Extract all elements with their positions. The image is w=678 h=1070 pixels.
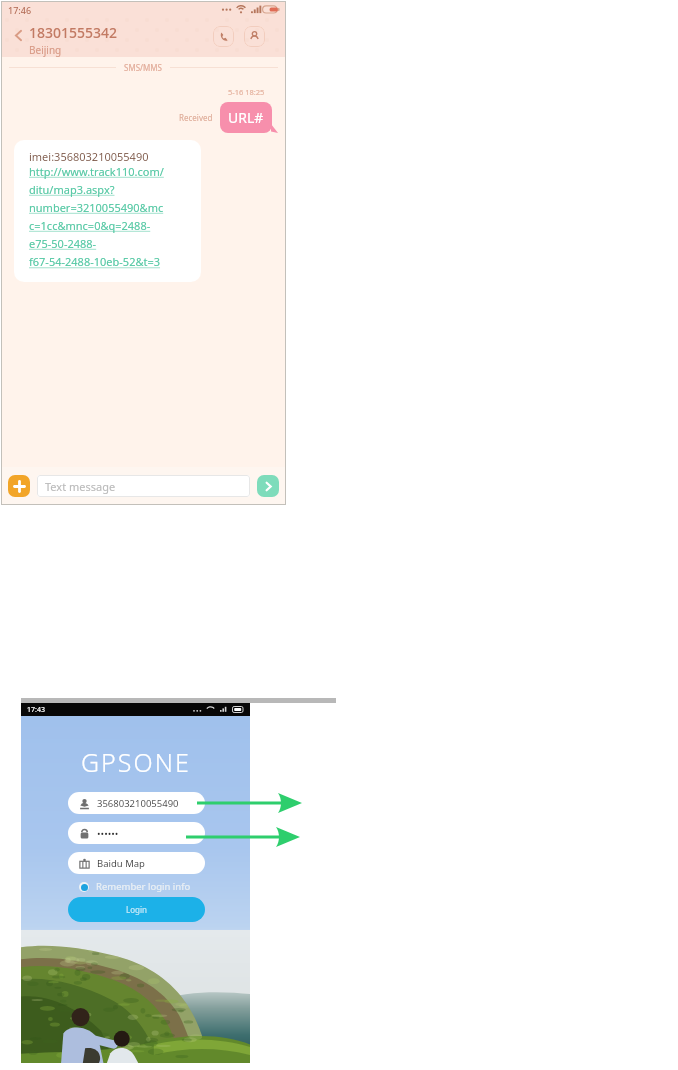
staticText: •••••• — [97, 827, 119, 840]
button[interactable]: Text message — [45, 475, 250, 497]
staticText: Beijing — [29, 43, 62, 57]
button[interactable]: 356803210055490 — [79, 792, 205, 814]
staticText: Remember login info — [96, 880, 191, 893]
button[interactable]: Remember login info — [68, 880, 205, 893]
staticText: GPSONE — [81, 745, 191, 779]
staticText: URL# — [228, 108, 264, 127]
staticText: 356803210055490 — [97, 797, 179, 810]
staticText: 5-16 18:25 — [228, 87, 265, 97]
staticText: SMS/MMS — [124, 62, 162, 73]
staticText: 18301555342 — [29, 23, 118, 42]
staticText: Received — [179, 112, 213, 123]
button[interactable]: Contact details — [244, 26, 265, 47]
button[interactable]: •••••• — [79, 822, 205, 844]
staticText: 17:46 — [8, 4, 32, 16]
staticText: 17:43 — [27, 705, 45, 715]
staticText: Text message — [45, 479, 116, 494]
staticText: imei:356803210055490 — [29, 149, 149, 164]
staticText: Login — [126, 904, 147, 915]
staticText: Baidu Map — [97, 857, 145, 870]
button[interactable]: Call — [213, 26, 234, 47]
button[interactable]: Back — [9, 26, 27, 44]
button[interactable]: Baidu Map — [79, 852, 205, 874]
button[interactable]: Add attachment — [8, 475, 30, 497]
staticText: http://www.track110.com/ ditu/map3.aspx?… — [29, 164, 164, 270]
button[interactable]: Send — [257, 475, 279, 497]
button[interactable]: Login — [68, 897, 205, 922]
